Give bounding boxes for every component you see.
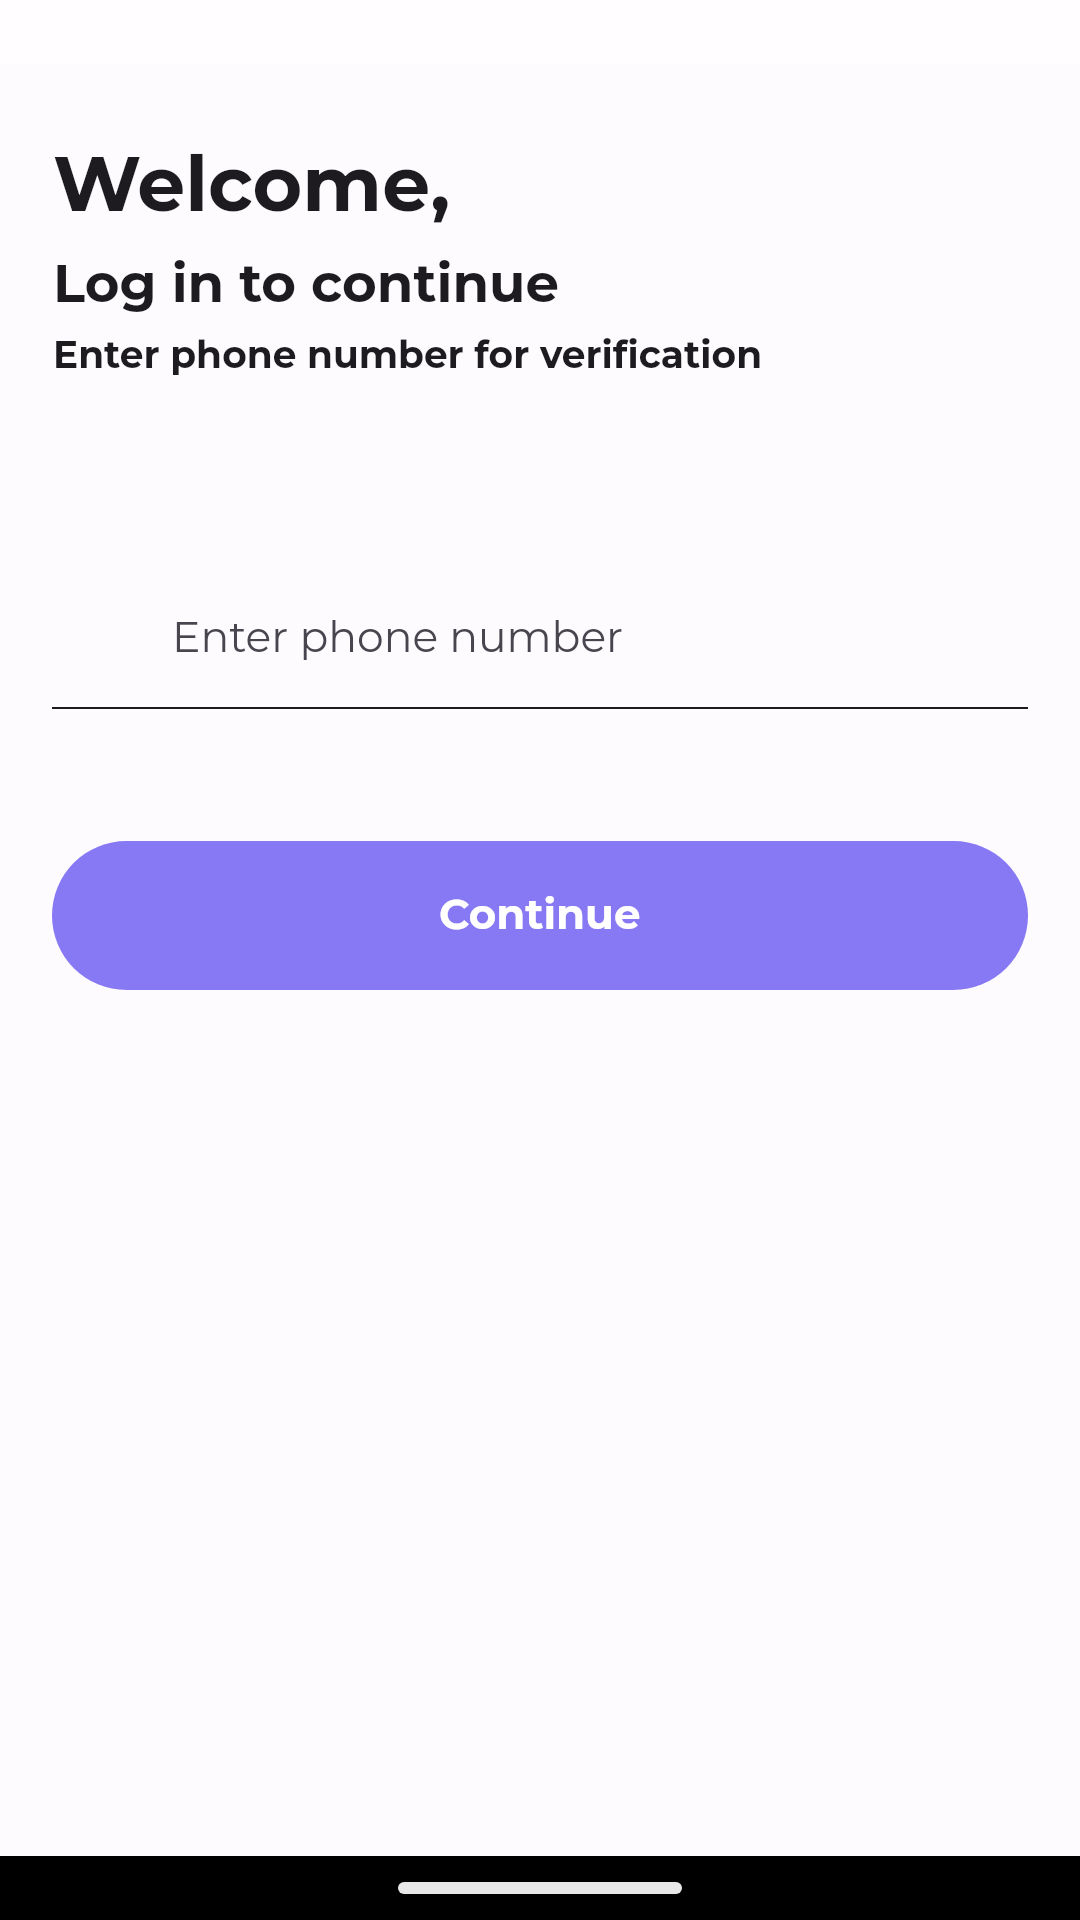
staticText: Log in to continue [53,251,559,316]
staticText: Enter phone number for verification [53,332,763,378]
button[interactable]: Enter phone number [52,611,1028,709]
button[interactable]: Continue [52,841,1028,990]
staticText: Continue [439,888,641,939]
other: Home [398,1882,682,1894]
staticText: Enter phone number [172,611,624,663]
staticText: Welcome, [53,137,451,230]
